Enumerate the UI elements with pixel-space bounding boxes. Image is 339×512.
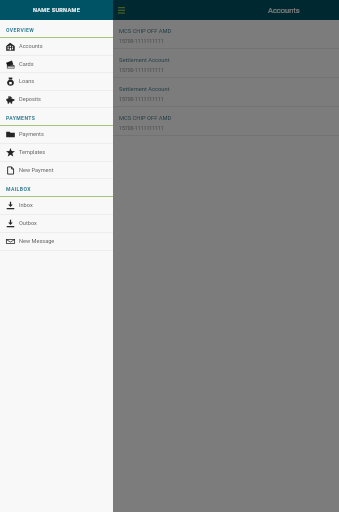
staticText: Templates [19,149,46,156]
staticText: Loans [19,78,35,85]
staticText: New Message [19,238,55,245]
staticText: 15700-1111111111 [119,125,164,131]
staticText: OVERVIEW [6,27,35,33]
staticText: 15700-1111111111 [119,38,164,44]
button[interactable]: Loans [0,73,113,91]
button[interactable]: New Payment [0,162,113,179]
staticText: MCS CHIP OFF AMD [119,28,172,35]
staticText: New Payment [19,167,54,174]
staticText: 15700-1111111111 [119,96,164,102]
staticText: MCS CHIP OFF AMD [119,115,172,122]
button[interactable]: Inbox [0,197,113,215]
button[interactable]: Deposits [0,91,113,108]
staticText: 15700-1111111111 [119,67,164,73]
button[interactable]: Outbox [0,215,113,233]
button[interactable]: New Message [0,233,113,251]
button[interactable]: Accounts [0,38,113,56]
button[interactable]: Settlement Account [113,49,339,78]
staticText: Accounts [19,43,43,50]
staticText: Outbox [19,220,37,227]
button[interactable]: Payments [0,126,113,144]
staticText: PAYMENTS [6,115,36,121]
button[interactable]: Templates [0,144,113,162]
button[interactable]: Cards [0,56,113,73]
staticText: Accounts [268,6,300,15]
staticText: Settlement Account [119,57,170,64]
button[interactable]: Open navigation drawer [114,3,128,17]
staticText: Cards [19,61,34,68]
button[interactable]: MCS CHIP OFF AMD [113,107,339,136]
button[interactable]: Settlement Account [113,78,339,107]
staticText: MAILBOX [6,186,31,192]
staticText: Settlement Account [119,86,170,93]
button[interactable]: MCS CHIP OFF AMD [113,20,339,49]
staticText: NAME SURNAME [33,7,81,14]
staticText: Inbox [19,202,33,209]
staticText: Deposits [19,96,41,103]
staticText: Payments [19,131,44,138]
